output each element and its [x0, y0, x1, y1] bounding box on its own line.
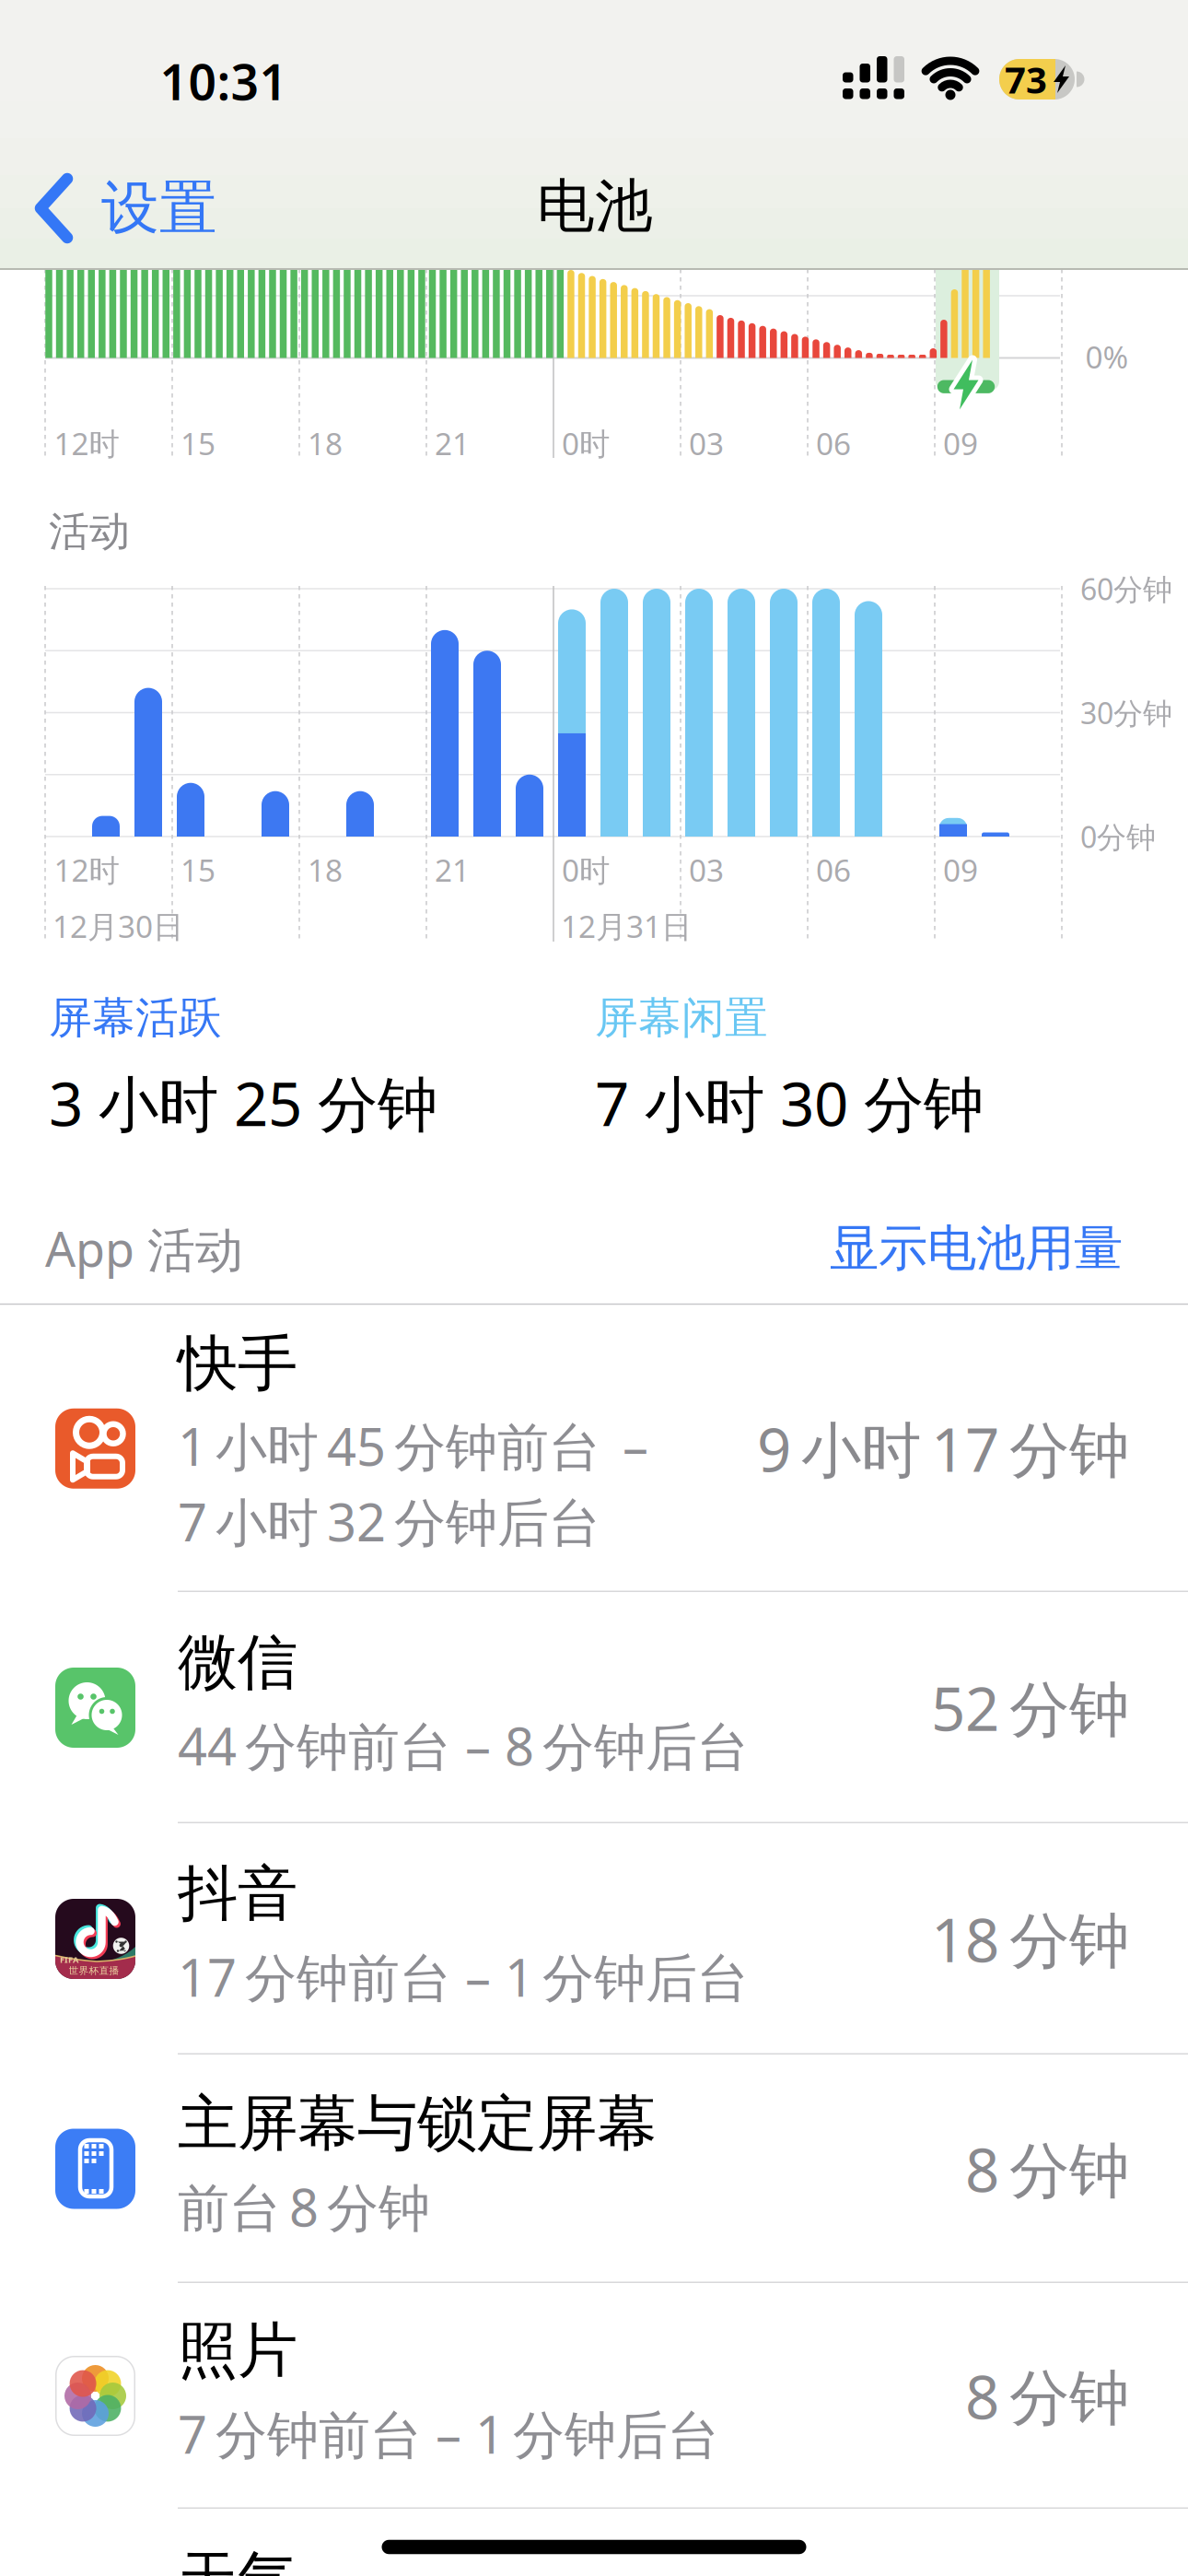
staticText: 7 小时 30 分钟 — [595, 1063, 984, 1143]
staticText: 12月30日 — [52, 906, 183, 946]
staticText: 快手 — [178, 1327, 297, 1401]
button[interactable]: 显示电池用量 — [0, 1212, 1123, 1285]
staticText: 屏幕活跃 — [49, 992, 222, 1044]
button[interactable]: 主屏幕与锁定屏幕 — [0, 2055, 1188, 2283]
staticText: 显示电池用量 — [830, 1218, 1123, 1279]
staticText: 15 — [181, 423, 215, 464]
staticText: 0% — [1085, 336, 1129, 377]
staticText: 09 — [943, 423, 978, 464]
button[interactable]: 微信 — [0, 1592, 1188, 1823]
staticText: 0时 — [562, 423, 610, 464]
staticText: 设置 — [101, 173, 217, 244]
button[interactable]: 照片 — [0, 2283, 1188, 2509]
staticText: 0时 — [562, 849, 610, 890]
staticText: 73 — [1005, 55, 1047, 104]
staticText: 03 — [689, 849, 724, 890]
staticText: 世界杯直播 — [69, 1965, 119, 1977]
button[interactable]: FIFA — [0, 1823, 1188, 2055]
staticText: 8 分钟 — [965, 2129, 1129, 2209]
staticText: 前台 8 分钟 — [178, 2172, 430, 2241]
staticText: FIFA — [60, 1954, 78, 1965]
button[interactable]: 设置 — [0, 170, 276, 247]
button[interactable]: 天气 — [0, 2509, 1188, 2576]
staticText: 18 — [308, 423, 343, 464]
staticText: 主屏幕与锁定屏幕 — [178, 2087, 657, 2161]
staticText: 12月31日 — [561, 906, 692, 946]
staticText: 天气 — [178, 2543, 297, 2576]
staticText: 照片 — [178, 2314, 297, 2388]
staticText: 30分钟 — [1080, 693, 1172, 732]
staticText: 15 — [181, 849, 215, 890]
staticText: 微信 — [178, 1626, 297, 1699]
staticText: 活动 — [49, 507, 130, 556]
staticText: 抖音 — [178, 1857, 297, 1931]
staticText: 屏幕闲置 — [595, 992, 768, 1044]
staticText: 21 — [435, 423, 470, 464]
staticText: 12时 — [54, 849, 119, 890]
staticText: 17 分钟前台 – 1 分钟后台 — [178, 1942, 749, 2011]
staticText: 44 分钟前台 – 8 分钟后台 — [178, 1711, 749, 1780]
staticText: 7 小时 32 分钟后台 — [178, 1487, 600, 1556]
staticText: 10:31 — [160, 48, 288, 114]
staticText: 9 小时 17 分钟 — [757, 1409, 1129, 1489]
staticText: 8 分钟 — [965, 2356, 1129, 2436]
staticText: 0分钟 — [1080, 817, 1156, 856]
staticText: 7 分钟前台 – 1 分钟后台 — [178, 2399, 719, 2468]
staticText: 12时 — [54, 423, 119, 464]
staticText: 电池 — [537, 171, 653, 242]
staticText: 21 — [435, 849, 470, 890]
button[interactable]: 快手 — [0, 1305, 1188, 1592]
staticText: 03 — [689, 423, 724, 464]
staticText: 06 — [816, 849, 851, 890]
staticText: 52 分钟 — [931, 1668, 1129, 1748]
staticText: 18 分钟 — [931, 1899, 1129, 1979]
staticText: App 活动 — [45, 1216, 243, 1280]
staticText: 3 小时 25 分钟 — [49, 1063, 437, 1143]
staticText: 09 — [943, 849, 978, 890]
staticText: 60分钟 — [1080, 569, 1172, 608]
staticText: 18 — [308, 849, 343, 890]
staticText: 06 — [816, 423, 851, 464]
staticText: 1 小时 45 分钟前台 – — [178, 1412, 648, 1480]
